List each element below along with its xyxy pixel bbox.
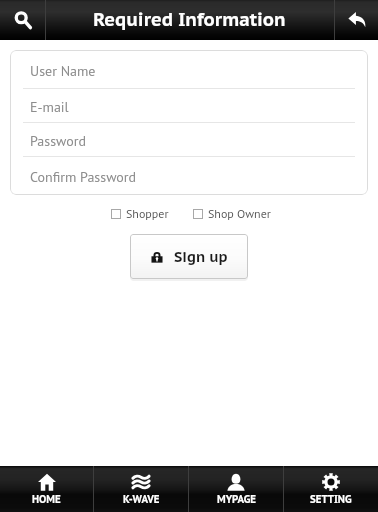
button[interactable]: MYPAGE — [189, 466, 283, 512]
button[interactable]: Back — [335, 0, 378, 40]
button[interactable]: K-WAVE — [94, 466, 188, 512]
staticText: Sign up — [174, 247, 228, 266]
button[interactable]: Search — [0, 0, 45, 40]
button[interactable]: Shopper — [111, 206, 169, 222]
staticText: E-mail — [30, 98, 69, 116]
staticText: User Name — [30, 62, 96, 80]
staticText: Password — [30, 132, 86, 150]
staticText: MYPAGE — [217, 493, 256, 506]
staticText: HOME — [32, 493, 61, 506]
button[interactable]: Shop Owner — [193, 206, 271, 222]
staticText: K-WAVE — [123, 493, 160, 506]
staticText: Shop Owner — [208, 206, 271, 222]
button[interactable]: Sign up — [130, 234, 248, 279]
staticText: Shopper — [126, 206, 169, 222]
button[interactable]: Confirm Password — [10, 157, 368, 195]
button[interactable]: User Name — [10, 50, 368, 89]
button[interactable]: SETTING — [284, 466, 378, 512]
button[interactable]: Password — [10, 123, 368, 157]
button[interactable]: HOME — [0, 466, 93, 512]
staticText: Required Information — [93, 7, 286, 31]
button[interactable]: E-mail — [10, 89, 368, 123]
staticText: Confirm Password — [30, 168, 137, 186]
staticText: SETTING — [310, 493, 352, 506]
